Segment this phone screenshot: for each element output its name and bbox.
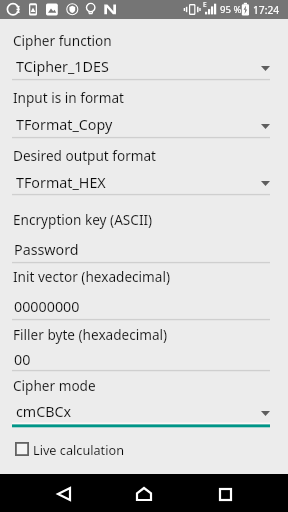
button[interactable] xyxy=(0,107,288,138)
staticText: 17:24 xyxy=(253,3,280,17)
staticText: cmCBCx xyxy=(16,402,72,421)
staticText: Encryption key (ASCII) xyxy=(13,210,153,229)
staticText: Filler byte (hexadecimal) xyxy=(13,325,168,344)
button[interactable] xyxy=(0,165,288,195)
staticText: Init vector (hexadecimal) xyxy=(13,267,171,286)
button[interactable]: Live calculation xyxy=(0,433,288,465)
staticText: Cipher mode xyxy=(13,376,96,395)
button[interactable] xyxy=(0,395,288,426)
staticText: Password xyxy=(14,240,79,259)
staticText: 00000000 xyxy=(14,297,80,316)
button[interactable] xyxy=(0,290,288,321)
staticText: E xyxy=(203,0,207,9)
staticText: Input is in format xyxy=(13,88,124,107)
staticText: Live calculation xyxy=(33,441,124,458)
staticText: TCipher_1DES xyxy=(16,57,109,76)
staticText: Cipher function xyxy=(13,31,112,50)
staticText: TFormat_Copy xyxy=(16,115,113,134)
staticText: Desired output format xyxy=(13,146,157,165)
button[interactable] xyxy=(0,232,288,263)
button[interactable]: Recent apps xyxy=(211,480,239,508)
button[interactable] xyxy=(0,50,288,81)
staticText: 00 xyxy=(14,350,31,369)
button[interactable]: Back xyxy=(50,480,78,508)
button[interactable]: Home xyxy=(130,480,158,508)
button[interactable] xyxy=(0,342,288,371)
staticText: TFormat_HEX xyxy=(16,173,106,192)
staticText: 95 % xyxy=(220,3,242,16)
